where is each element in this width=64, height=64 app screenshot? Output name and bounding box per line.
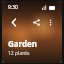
staticText: 12 plants: [8, 50, 30, 57]
button[interactable]: Back: [7, 15, 21, 29]
staticText: 9:30: [8, 4, 18, 11]
button[interactable]: More options: [43, 15, 57, 29]
button[interactable]: Share: [29, 15, 43, 29]
staticText: Garden: [8, 38, 38, 49]
